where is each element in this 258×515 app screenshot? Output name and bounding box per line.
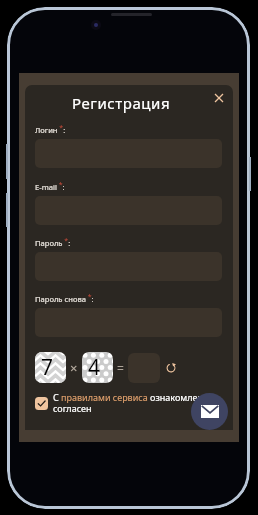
staticText: E-mail *: [35, 180, 65, 192]
staticText: Пароль *: [35, 236, 71, 248]
staticText: × [70, 359, 78, 377]
button[interactable]: Close [210, 89, 228, 107]
button[interactable]: Send email [191, 393, 228, 430]
staticText: Регистрация [72, 93, 171, 113]
staticText: 7 [41, 353, 54, 382]
staticText: 4 [88, 353, 101, 382]
staticText: Логин *: [35, 123, 66, 135]
staticText: Пароль снова *: [35, 292, 94, 304]
button[interactable]: С правилами сервиса ознакомлен и согласе… [35, 391, 225, 414]
staticText: С правилами сервиса ознакомлен и согласе… [53, 391, 225, 414]
button[interactable]: Refresh captcha [163, 360, 178, 375]
staticText: = [117, 360, 124, 376]
